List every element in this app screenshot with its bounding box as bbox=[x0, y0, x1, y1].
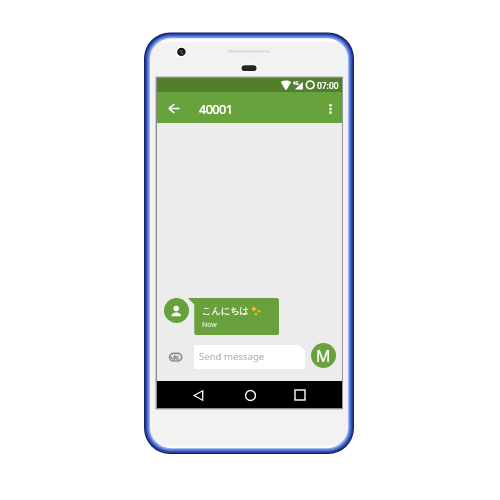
staticText: M bbox=[316, 345, 331, 367]
staticText: Now bbox=[202, 320, 217, 329]
button[interactable]: Send message bbox=[194, 345, 305, 369]
button[interactable]: Recent apps bbox=[287, 382, 313, 408]
button[interactable]: Back bbox=[185, 382, 211, 408]
staticText: 40001 bbox=[199, 100, 233, 117]
button[interactable]: Navigate up bbox=[157, 92, 188, 123]
staticText: 4G bbox=[293, 80, 299, 86]
button[interactable]: Account bbox=[311, 343, 336, 368]
staticText: Send message bbox=[199, 350, 265, 363]
button[interactable]: Home bbox=[237, 382, 263, 408]
button[interactable]: Contact avatar bbox=[164, 298, 189, 323]
button[interactable] bbox=[188, 298, 279, 335]
staticText: 07:00 bbox=[317, 80, 339, 91]
button[interactable]: More options bbox=[318, 92, 342, 123]
staticText: こんにちは bbox=[202, 305, 250, 317]
